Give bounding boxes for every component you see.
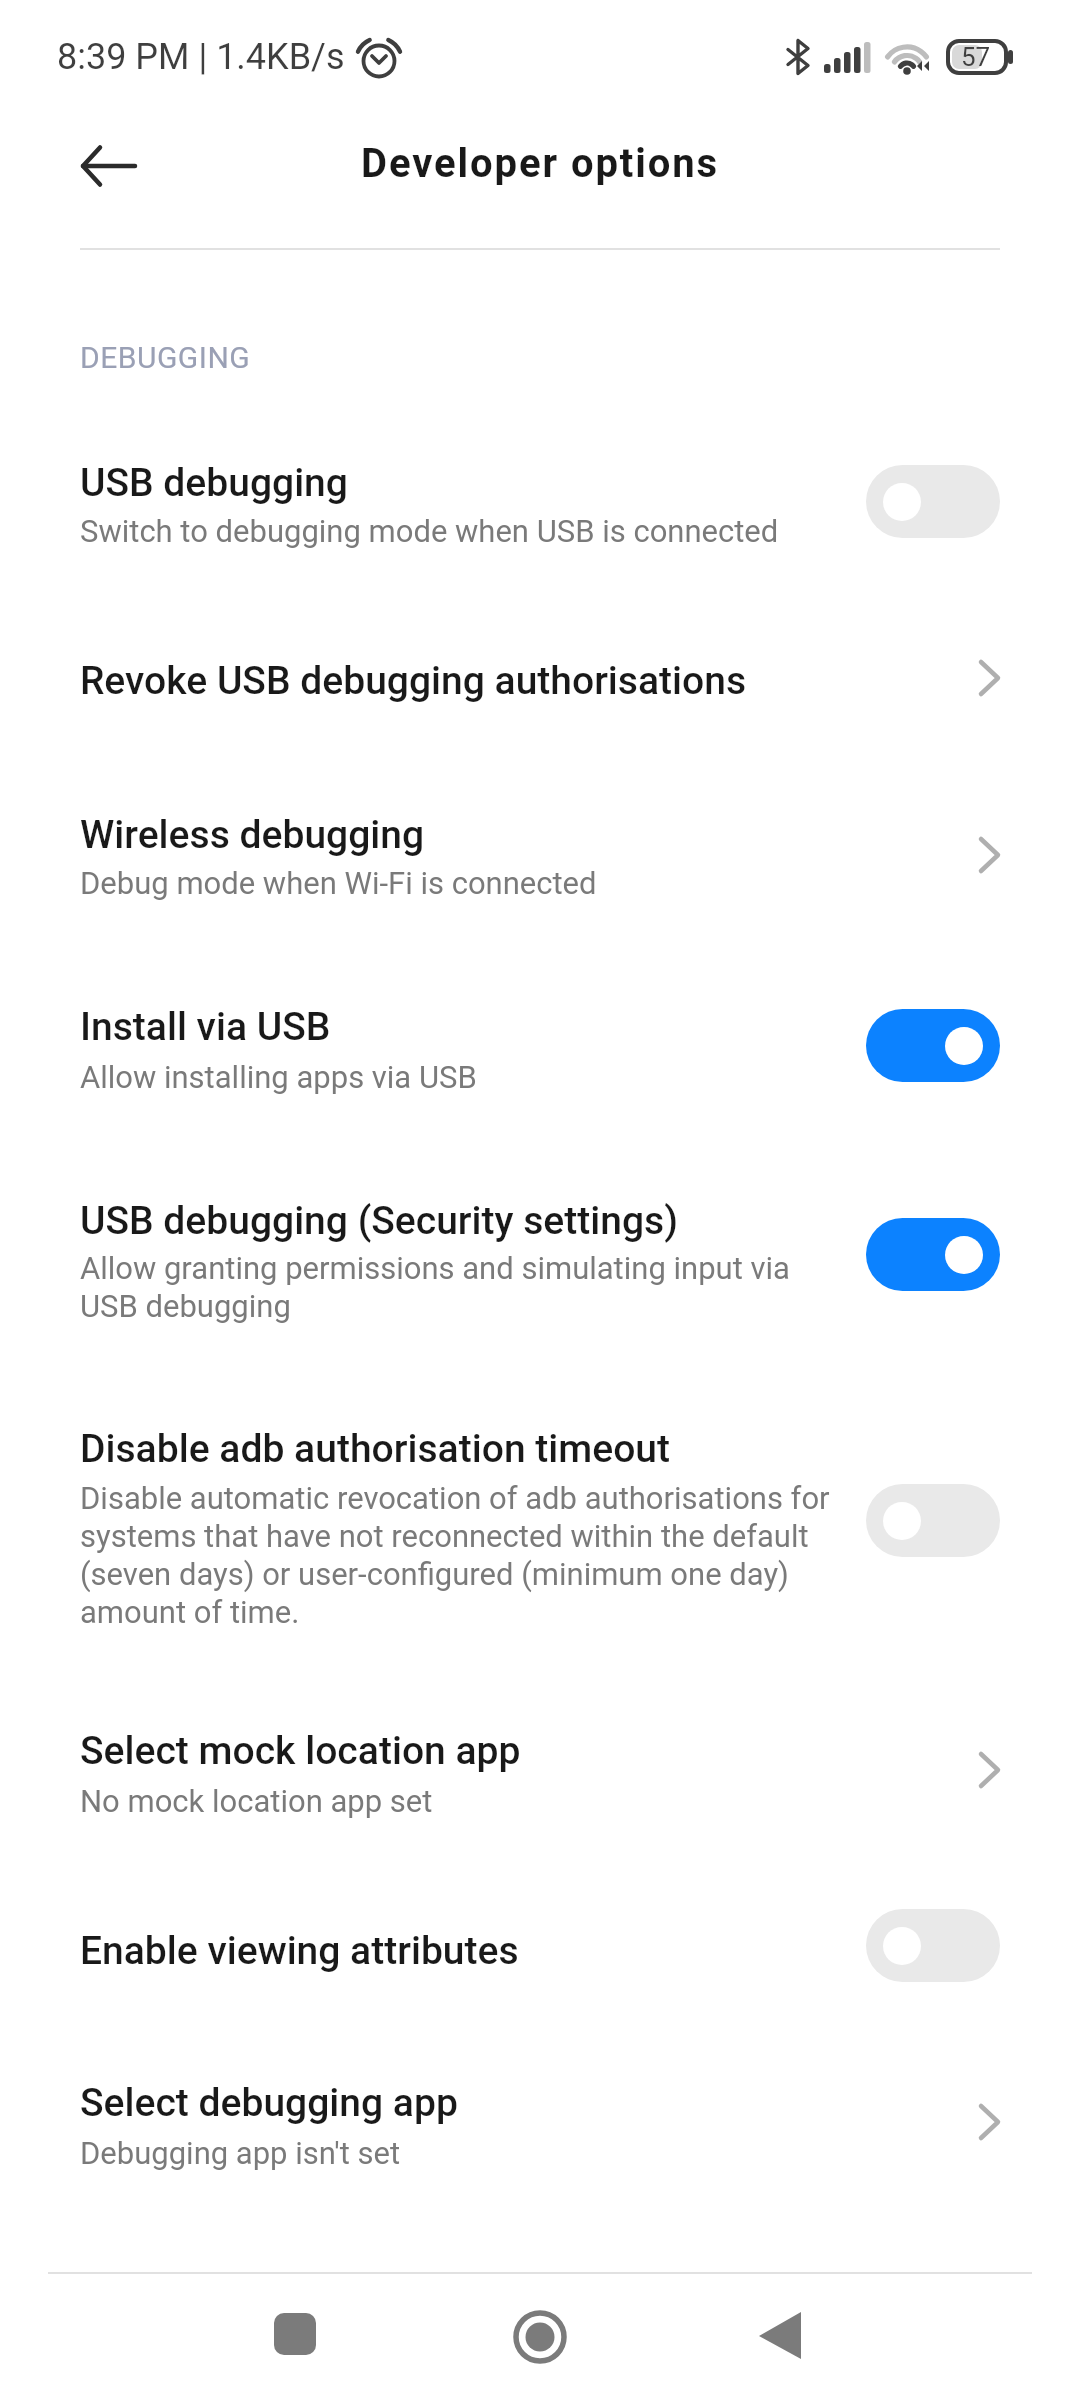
button[interactable] [866,1009,1000,1082]
button[interactable] [0,640,1080,730]
button[interactable] [512,2309,568,2365]
button[interactable] [0,2057,1080,2187]
staticText: Disable automatic revocation of adb auth… [80,1480,830,1630]
button[interactable] [0,1175,1080,1345]
staticText: Select debugging app [80,2080,458,2126]
button[interactable] [866,1909,1000,1982]
staticText: Allow granting permissions and simulatin… [80,1250,790,1324]
button[interactable] [0,435,1080,570]
button[interactable] [0,1705,1080,1835]
staticText: Debugging app isn't set [80,2135,401,2171]
button[interactable] [866,1218,1000,1291]
staticText: Debug mode when Wi-Fi is connected [80,865,597,901]
staticText: Allow installing apps via USB [80,1059,477,1095]
button[interactable] [866,1484,1000,1557]
staticText: Enable viewing attributes [80,1928,519,1974]
staticText: 57 [961,42,991,72]
button[interactable] [0,790,1080,920]
button[interactable] [0,1403,1080,1648]
staticText: USB debugging (Security settings) [80,1198,678,1244]
button[interactable] [0,1905,1080,1995]
staticText: DEBUGGING [80,340,251,375]
button[interactable] [866,465,1000,538]
staticText: Disable adb authorisation timeout [80,1426,670,1472]
staticText: 8:39 PM | 1.4KB/s [57,36,345,78]
staticText: Install via USB [80,1004,331,1050]
button[interactable] [62,126,156,206]
button[interactable] [0,982,1080,1112]
staticText: No mock location app set [80,1783,433,1819]
staticText: Wireless debugging [80,812,425,858]
staticText: Revoke USB debugging authorisations [80,658,747,704]
staticText: Switch to debugging mode when USB is con… [80,513,779,549]
staticText: Select mock location app [80,1728,521,1774]
staticText: USB debugging [80,460,348,506]
button[interactable] [759,2312,803,2360]
button[interactable] [274,2313,316,2355]
staticText: Developer options [361,140,720,187]
